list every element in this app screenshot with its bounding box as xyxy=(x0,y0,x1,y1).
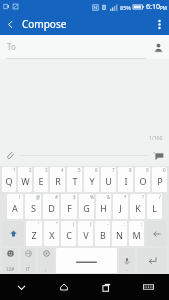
button[interactable]: Recent apps xyxy=(85,274,127,300)
button[interactable]: Change language xyxy=(20,248,36,273)
staticText: Y xyxy=(89,175,95,187)
button[interactable]: More options xyxy=(149,14,169,34)
staticText: . xyxy=(126,266,128,272)
staticText: , xyxy=(45,266,47,272)
button[interactable]: Attach xyxy=(1,146,19,164)
button[interactable]: " xyxy=(44,221,59,246)
staticText: ! xyxy=(19,194,21,200)
button[interactable]: ; xyxy=(129,221,144,246)
staticText: T xyxy=(72,175,78,187)
staticText: B xyxy=(100,229,106,241)
staticText: C xyxy=(66,229,72,241)
staticText: 4 xyxy=(61,167,64,173)
button[interactable]: 2 xyxy=(18,167,32,192)
button[interactable]: @ xyxy=(25,194,41,219)
button[interactable]: ) xyxy=(78,221,93,246)
button[interactable]: 8 xyxy=(118,167,133,192)
staticText: % xyxy=(90,194,94,200)
staticText: ; xyxy=(141,221,143,227)
staticText: Q xyxy=(5,175,13,187)
button[interactable]: Back xyxy=(0,14,20,34)
staticText: E xyxy=(38,175,44,187)
button[interactable]: # xyxy=(43,194,59,219)
staticText: PM xyxy=(160,5,167,11)
staticText: Compose xyxy=(22,17,67,31)
button[interactable]: 3 xyxy=(34,167,48,192)
staticText: 7 xyxy=(112,167,115,173)
staticText: 8 xyxy=(129,167,132,173)
button[interactable]: Hide keyboard xyxy=(0,274,43,300)
button[interactable]: 5 xyxy=(67,167,82,192)
button[interactable]: Backspace xyxy=(146,221,167,246)
staticText: D xyxy=(48,202,55,214)
button[interactable]: & xyxy=(96,194,111,219)
button[interactable]: ' xyxy=(26,221,42,246)
staticText: - xyxy=(107,221,109,227)
staticText: $ xyxy=(73,194,76,200)
button[interactable]: Symbols xyxy=(2,248,18,273)
staticText: ) xyxy=(90,221,92,227)
button[interactable]: ? xyxy=(130,194,145,219)
staticText: 85% xyxy=(120,4,131,11)
button[interactable]: 1 xyxy=(2,167,16,192)
staticText: S xyxy=(31,202,36,214)
staticText: " xyxy=(56,221,58,227)
button[interactable]: Space xyxy=(56,248,117,273)
button[interactable]: 9 xyxy=(135,167,150,192)
staticText: 1/160 xyxy=(149,135,163,142)
button[interactable]: % xyxy=(79,194,94,219)
button[interactable]: 7 xyxy=(101,167,116,192)
staticText: A xyxy=(12,202,18,214)
button[interactable]: Add contact xyxy=(150,39,166,55)
staticText: 9 xyxy=(146,167,149,173)
staticText: O xyxy=(139,175,147,187)
staticText: 1 xyxy=(13,167,16,173)
staticText: H xyxy=(100,202,107,214)
button[interactable]: Send xyxy=(149,146,167,164)
button[interactable]: Voice input xyxy=(119,248,135,273)
staticText: K xyxy=(135,202,141,214)
button[interactable]: - xyxy=(95,221,110,246)
staticText: V xyxy=(83,229,89,241)
staticText: 2 xyxy=(29,167,32,173)
staticText: I xyxy=(124,175,128,187)
staticText: 3 xyxy=(45,167,48,173)
staticText: & xyxy=(107,194,111,200)
staticText: IT xyxy=(26,266,31,272)
staticText: ? xyxy=(142,194,144,200)
button[interactable]: Enter xyxy=(137,248,167,273)
staticText: 5 xyxy=(78,167,81,173)
button[interactable]: 6 xyxy=(84,167,99,192)
button[interactable]: ( xyxy=(61,221,76,246)
staticText: @ xyxy=(36,194,41,200)
button[interactable]: Switch keyboard xyxy=(127,274,169,300)
staticText: X xyxy=(49,229,55,241)
staticText: U xyxy=(105,175,112,187)
staticText: 6:10 xyxy=(146,2,160,12)
staticText: # xyxy=(55,194,58,200)
button[interactable]: / xyxy=(147,194,162,219)
button[interactable]: 4 xyxy=(50,167,65,192)
staticText: 6 xyxy=(95,167,98,173)
button[interactable]: Home xyxy=(43,274,85,300)
staticText: R xyxy=(55,175,61,187)
staticText: ( xyxy=(73,221,75,227)
staticText: G xyxy=(83,202,90,214)
staticText: F xyxy=(67,202,72,214)
button[interactable]: Shift xyxy=(2,221,24,246)
staticText: : xyxy=(124,221,126,227)
staticText: 12# xyxy=(6,266,15,272)
staticText: M xyxy=(132,229,141,241)
staticText: W xyxy=(21,175,30,187)
button[interactable]: : xyxy=(112,221,127,246)
staticText: L xyxy=(152,202,157,214)
button[interactable]: $ xyxy=(61,194,77,219)
staticText: / xyxy=(159,194,161,200)
button[interactable]: * xyxy=(113,194,128,219)
button[interactable]: Settings xyxy=(38,248,54,273)
button[interactable]: ! xyxy=(7,194,23,219)
staticText: Z xyxy=(31,229,37,241)
staticText: * xyxy=(124,194,127,200)
button[interactable]: 0 xyxy=(152,167,167,192)
staticText: J xyxy=(119,202,122,214)
